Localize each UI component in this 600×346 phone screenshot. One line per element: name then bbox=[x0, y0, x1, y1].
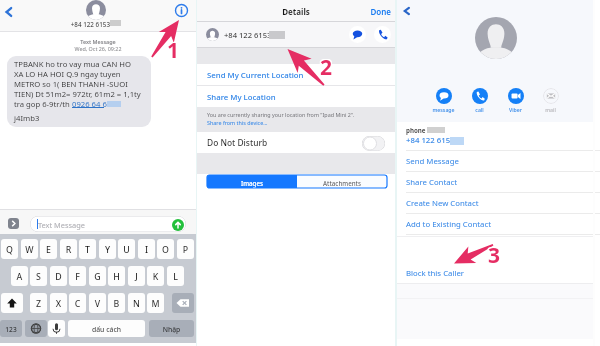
button[interactable]: T bbox=[79, 239, 96, 259]
staticText: Send My Current Location bbox=[207, 70, 304, 81]
staticText: dấu cách bbox=[68, 325, 145, 337]
staticText: +84 122 6153 bbox=[46, 20, 110, 29]
button[interactable]: Y bbox=[99, 239, 116, 259]
staticText: You are currently sharing your location … bbox=[207, 111, 355, 118]
button[interactable]: N bbox=[128, 293, 145, 313]
button[interactable]: U bbox=[118, 239, 135, 259]
button[interactable]: Send My Current Location bbox=[197, 64, 395, 85]
button[interactable]: Change keyboard bbox=[25, 320, 47, 337]
button[interactable]: Do Not Disturb toggle bbox=[362, 136, 385, 151]
staticText: B bbox=[108, 298, 125, 313]
button[interactable]: Call bbox=[374, 26, 391, 43]
button[interactable]: V bbox=[89, 293, 106, 313]
staticText: V bbox=[89, 298, 106, 313]
button[interactable]: Share My Location bbox=[197, 86, 395, 107]
staticText: Q bbox=[1, 244, 18, 259]
staticText: Share Contact bbox=[406, 177, 458, 188]
button[interactable]: Nhập bbox=[149, 320, 194, 337]
button[interactable]: dấu cách bbox=[68, 320, 145, 337]
staticText: TIEN) Dt 51m2= 972tr, 61m2 = 1,1ty bbox=[14, 89, 141, 99]
staticText: 2 bbox=[320, 53, 333, 82]
staticText: G bbox=[89, 271, 106, 286]
button[interactable]: Info bbox=[174, 3, 189, 18]
button[interactable]: Shift bbox=[1, 293, 23, 313]
staticText: Details bbox=[197, 6, 395, 17]
button[interactable]: Backspace bbox=[172, 293, 194, 313]
staticText: R bbox=[60, 244, 77, 259]
button[interactable]: A bbox=[11, 266, 28, 286]
staticText: Z bbox=[30, 298, 47, 313]
button[interactable]: M bbox=[147, 293, 164, 313]
staticText: 2 bbox=[320, 52, 333, 81]
button[interactable]: Q bbox=[1, 239, 18, 259]
button[interactable]: I bbox=[138, 239, 155, 259]
staticText: L bbox=[167, 271, 184, 286]
button[interactable]: Text Message bbox=[30, 216, 186, 232]
button[interactable]: H bbox=[108, 266, 125, 286]
button[interactable]: X bbox=[50, 293, 67, 313]
button[interactable]: Attachments bbox=[297, 175, 387, 188]
button[interactable]: Do Not Disturb bbox=[197, 132, 395, 153]
button[interactable]: Create New Contact bbox=[397, 193, 593, 214]
button[interactable]: Z bbox=[30, 293, 47, 313]
button[interactable]: Done bbox=[353, 6, 391, 17]
button[interactable]: Share from this device... bbox=[207, 119, 268, 126]
staticText: A bbox=[11, 271, 28, 286]
button[interactable]: mail bbox=[535, 88, 566, 113]
button[interactable]: Back bbox=[399, 3, 415, 19]
staticText: P bbox=[177, 244, 194, 259]
staticText: C bbox=[69, 298, 86, 313]
staticText: 2 bbox=[321, 52, 334, 81]
button[interactable]: Share Contact bbox=[397, 172, 593, 193]
button[interactable]: R bbox=[60, 239, 77, 259]
button[interactable]: Images bbox=[207, 175, 297, 188]
button[interactable]: Message bbox=[349, 26, 366, 43]
staticText: 1 bbox=[168, 37, 181, 66]
button[interactable]: Add to Existing Contact bbox=[397, 214, 593, 235]
button[interactable]: J bbox=[128, 266, 145, 286]
button[interactable]: P bbox=[177, 239, 194, 259]
button[interactable]: D bbox=[50, 266, 67, 286]
button[interactable]: E bbox=[40, 239, 57, 259]
button[interactable]: Send bbox=[172, 219, 184, 231]
staticText: 1 bbox=[167, 37, 180, 66]
button[interactable]: C bbox=[69, 293, 86, 313]
button[interactable]: O bbox=[157, 239, 174, 259]
button[interactable]: 123 bbox=[0, 320, 22, 337]
staticText: 1 bbox=[167, 36, 180, 65]
button[interactable]: More bbox=[8, 218, 19, 229]
staticText: TPBANK ho tro vay mua CAN HO bbox=[14, 59, 131, 69]
button[interactable]: Block this Caller bbox=[397, 262, 593, 283]
staticText: 1 bbox=[166, 37, 179, 66]
button[interactable]: W bbox=[21, 239, 38, 259]
button[interactable]: L bbox=[167, 266, 184, 286]
button[interactable]: Back bbox=[0, 3, 18, 21]
button[interactable]: F bbox=[69, 266, 86, 286]
staticText: 123 bbox=[0, 325, 22, 337]
button[interactable]: TPBANK ho tro vay mua CAN HO bbox=[7, 56, 151, 127]
staticText: 3 bbox=[489, 242, 502, 271]
button[interactable]: S bbox=[30, 266, 47, 286]
staticText: O bbox=[157, 244, 174, 259]
staticText: J bbox=[128, 271, 145, 286]
button[interactable]: +84 122 6153: bbox=[197, 22, 395, 47]
button[interactable]: Dictate bbox=[48, 320, 65, 337]
staticText: 2 bbox=[320, 54, 333, 83]
staticText: 0926 64 6 bbox=[72, 99, 107, 109]
staticText: 1 bbox=[168, 35, 181, 64]
staticText: Do Not Disturb bbox=[207, 137, 268, 148]
staticText: 1 bbox=[167, 35, 180, 64]
button[interactable]: K bbox=[147, 266, 164, 286]
staticText: I bbox=[138, 244, 155, 259]
button[interactable]: Viber bbox=[500, 88, 531, 113]
button[interactable]: call bbox=[464, 88, 495, 113]
staticText: 3 bbox=[488, 240, 501, 269]
staticText: +84 122 6153 bbox=[406, 135, 455, 146]
button[interactable]: Send Message bbox=[397, 151, 593, 172]
button[interactable]: G bbox=[89, 266, 106, 286]
button[interactable]: message bbox=[428, 88, 459, 113]
staticText: XA LO HA HOI Q.9 ngay tuyen bbox=[14, 69, 121, 79]
staticText: Share My Location bbox=[207, 92, 276, 103]
staticText: W bbox=[21, 244, 38, 259]
button[interactable]: B bbox=[108, 293, 125, 313]
